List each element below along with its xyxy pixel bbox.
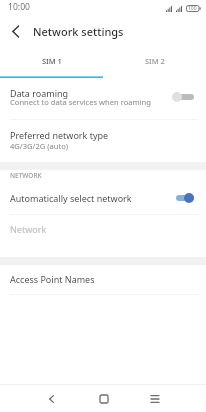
staticText: Automatically select network (10, 192, 174, 204)
button[interactable]: Menu (129, 385, 180, 412)
staticText: 100 (188, 5, 197, 12)
staticText: Preferred network type (10, 129, 109, 141)
staticText: NETWORK (10, 171, 42, 180)
button[interactable]: SIM 1 (0, 44, 103, 76)
button[interactable]: Network (0, 215, 206, 257)
button[interactable]: Back (1, 18, 31, 44)
button[interactable]: SIM 2 (103, 44, 206, 76)
button[interactable]: Data roaming (0, 78, 206, 120)
staticText: 10:00 (8, 1, 30, 13)
button[interactable]: Automatically select network (0, 185, 206, 215)
button[interactable]: Back (26, 385, 77, 412)
staticText: 4G/3G/2G (auto) (10, 141, 69, 151)
staticText: Network settings (33, 24, 124, 39)
staticText: Network (10, 223, 196, 235)
button[interactable]: Home (78, 385, 129, 412)
staticText: SIM 2 (145, 56, 165, 66)
button[interactable]: Preferred network type (0, 120, 206, 162)
staticText: Connect to data services when roaming (10, 97, 151, 107)
staticText: Access Point Names (10, 273, 196, 285)
staticText: SIM 1 (42, 56, 62, 66)
button[interactable]: Access Point Names (0, 265, 206, 295)
staticText: Data roaming (10, 87, 69, 99)
